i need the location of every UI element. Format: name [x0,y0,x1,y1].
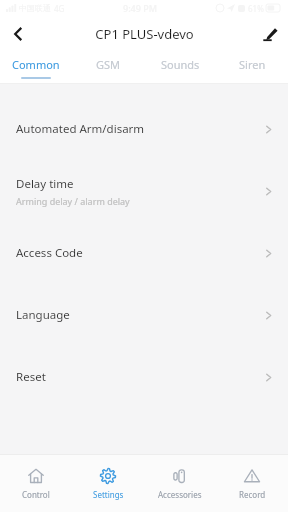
button[interactable]: Delay time [0,160,288,222]
staticText: Language [16,307,70,323]
staticText: 4G [54,3,65,14]
staticText: Sounds [161,57,200,72]
staticText: Access Code [16,245,83,261]
staticText: Siren [239,57,266,72]
button[interactable]: Settings [72,455,144,512]
button[interactable]: Reset [0,346,288,408]
staticText: Reset [16,369,46,385]
button[interactable]: Language [0,284,288,346]
staticText: Common [12,57,60,72]
button[interactable]: Access Code [0,222,288,284]
staticText: Record [239,489,266,500]
staticText: 61% [248,3,264,14]
staticText: Automated Arm/disarm [16,121,145,137]
button[interactable]: Siren [216,52,288,84]
staticText: Arming delay / alarm delay [16,195,130,207]
button[interactable]: Accessories [144,455,216,512]
button[interactable]: Record [216,455,288,512]
button[interactable]: Control [0,455,72,512]
staticText: 9:49 PM [123,2,157,14]
staticText: Accessories [158,489,202,500]
button[interactable]: GSM [72,52,144,84]
staticText: GSM [96,57,121,72]
button[interactable]: Edit [252,16,288,52]
button[interactable]: Sounds [144,52,216,84]
staticText: CP1 PLUS-vdevo [95,25,194,43]
staticText: Delay time [16,176,74,192]
button[interactable]: Common [0,52,72,84]
staticText: 中国联通 [19,3,51,13]
button[interactable]: Back [0,16,36,52]
button[interactable]: Automated Arm/disarm [0,98,288,160]
staticText: Control [22,489,50,500]
staticText: Settings [93,489,124,500]
